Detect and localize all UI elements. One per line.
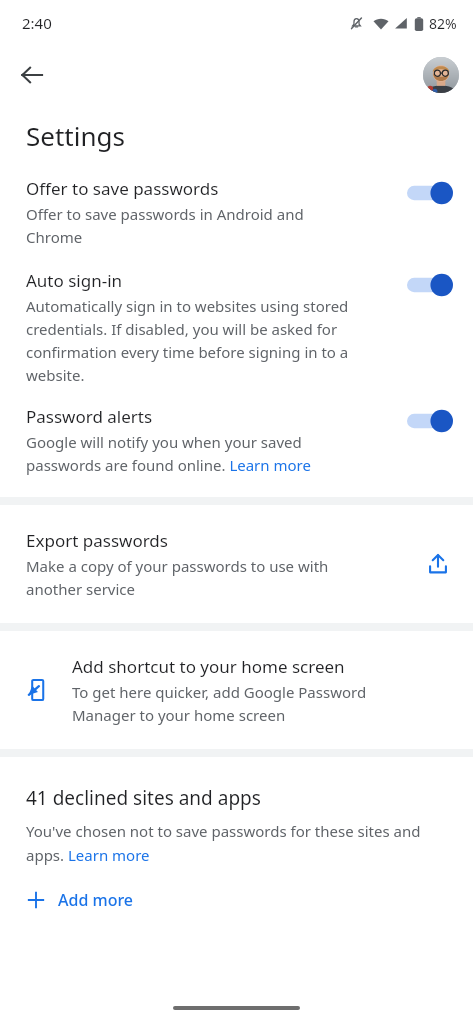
staticText: Password alerts xyxy=(26,405,153,428)
staticText: Add shortcut to your home screen xyxy=(72,655,345,678)
staticText: Make a copy of your passwords to use wit… xyxy=(26,556,329,599)
staticText: 82% xyxy=(429,14,457,33)
staticText: To get here quicker, add Google Password… xyxy=(72,682,367,725)
button[interactable]: Toggle xyxy=(407,273,453,297)
staticText: You've chosen not to save passwords for … xyxy=(26,821,421,865)
staticText: Offer to save passwords xyxy=(26,177,219,200)
staticText: Offer to save passwords in Android and C… xyxy=(26,204,304,247)
staticText: 41 declined sites and apps xyxy=(26,785,261,811)
staticText: Add more xyxy=(58,889,134,911)
button[interactable]: Add more xyxy=(26,885,142,915)
staticText: Automatically sign in to websites using … xyxy=(26,296,349,385)
staticText: Auto sign-in xyxy=(26,269,123,292)
button[interactable]: Toggle xyxy=(407,409,453,433)
button[interactable]: Account xyxy=(423,57,459,93)
staticText: Google will notify you when your saved p… xyxy=(26,432,311,475)
staticText: Export passwords xyxy=(26,529,168,552)
button[interactable]: Password alerts xyxy=(0,405,473,475)
button[interactable]: Back xyxy=(8,51,56,99)
staticText: Settings xyxy=(26,118,125,153)
button[interactable]: Add shortcut to your home screen xyxy=(0,631,473,749)
button[interactable]: Export passwords xyxy=(0,505,473,623)
staticText: 2:40 xyxy=(22,13,52,33)
button[interactable]: Toggle xyxy=(407,181,453,205)
button[interactable]: Offer to save passwords xyxy=(0,177,473,247)
other: Export xyxy=(425,551,451,577)
button[interactable]: Auto sign-in xyxy=(0,269,473,385)
